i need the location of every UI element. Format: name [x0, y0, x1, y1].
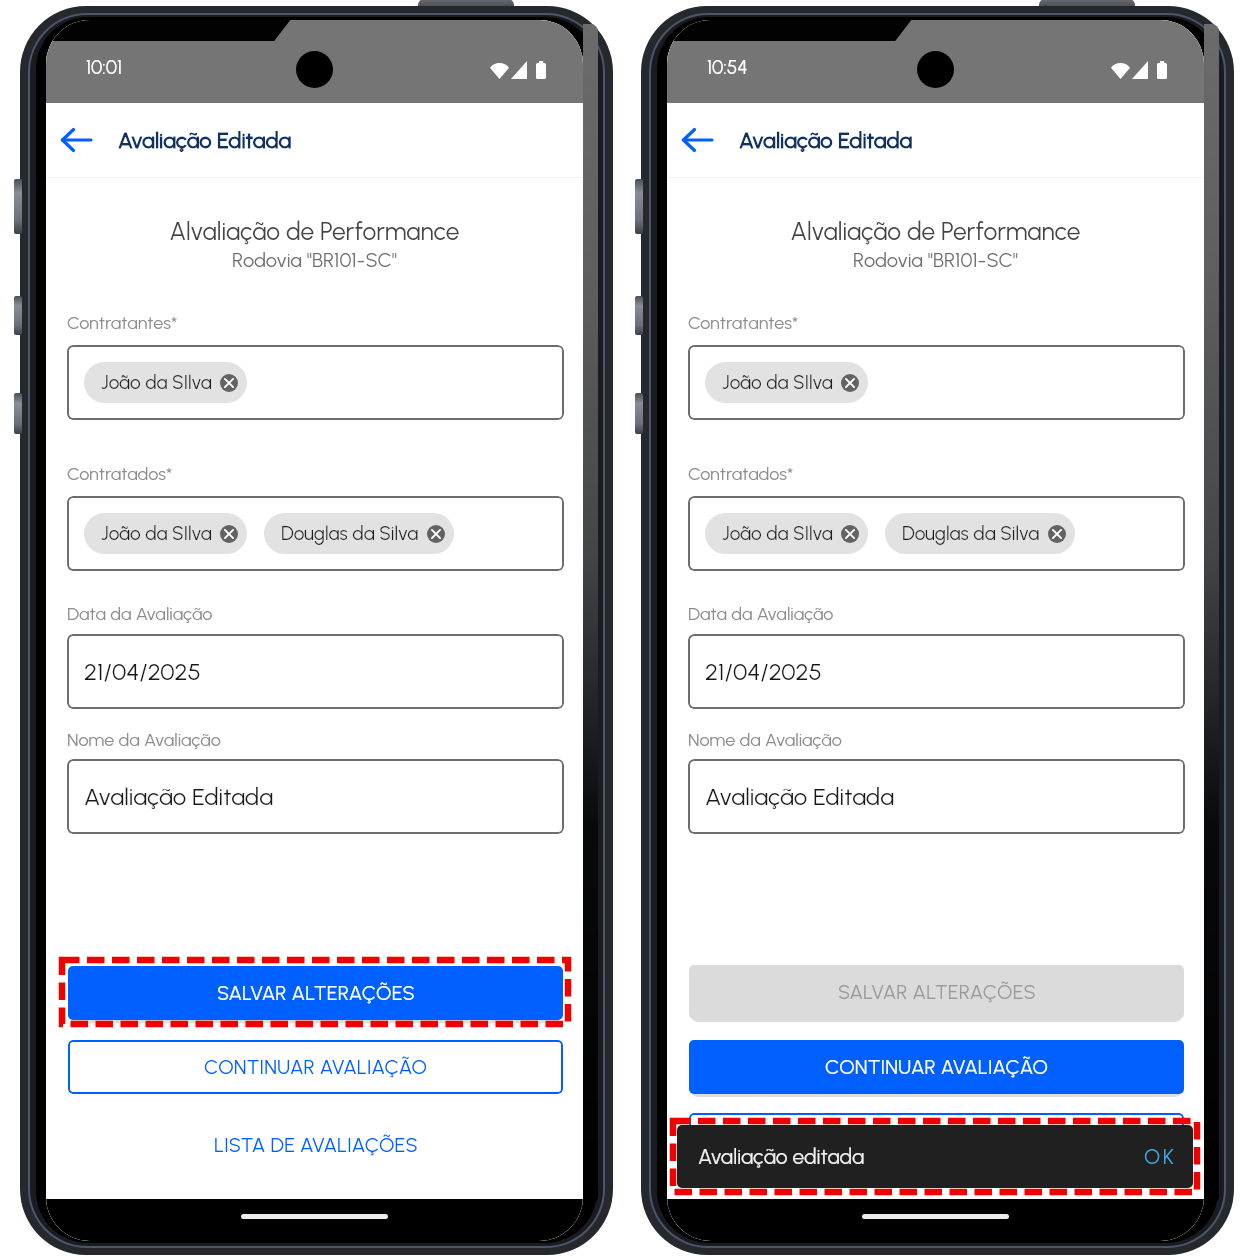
- staticText: Contratados*: [688, 463, 794, 485]
- staticText: 21/04/2025: [84, 657, 201, 686]
- staticText: Alvaliação de Performance: [46, 217, 583, 246]
- staticText: Douglas da Silva: [281, 522, 419, 545]
- button[interactable]: Douglas da Silva: [264, 513, 454, 554]
- button[interactable]: Avaliação Editada: [67, 759, 564, 834]
- button[interactable]: João da SIlva: [67, 496, 564, 571]
- button[interactable]: Avaliação editada: [677, 1125, 1193, 1188]
- staticText: CONTINUAR AVALIAÇÃO: [825, 1055, 1049, 1079]
- staticText: CONTINUAR AVALIAÇÃO: [204, 1055, 428, 1079]
- staticText: 10:54: [707, 56, 748, 79]
- button[interactable]: João da SIlva: [688, 345, 1185, 420]
- staticText: Rodovia "BR101-SC": [46, 248, 583, 272]
- button[interactable]: CONTINUAR AVALIAÇÃO: [689, 1040, 1184, 1094]
- button[interactable]: [689, 1113, 1184, 1167]
- staticText: Avaliação Editada: [739, 127, 913, 153]
- staticText: Avaliação editada: [698, 1144, 865, 1169]
- button[interactable]: João da SIlva: [84, 362, 247, 403]
- staticText: João da SIlva: [101, 522, 212, 545]
- staticText: 21/04/2025: [705, 657, 822, 686]
- button[interactable]: CONTINUAR AVALIAÇÃO: [68, 1040, 563, 1094]
- staticText: João da SIlva: [101, 371, 212, 394]
- staticText: Nome da Avaliação: [688, 729, 842, 751]
- staticText: Rodovia "BR101-SC": [667, 248, 1204, 272]
- button[interactable]: SALVAR ALTERAÇÕES: [689, 965, 1184, 1019]
- staticText: Douglas da Silva: [902, 522, 1040, 545]
- staticText: OK: [1144, 1144, 1177, 1169]
- staticText: João da SIlva: [722, 371, 833, 394]
- staticText: Alvaliação de Performance: [667, 217, 1204, 246]
- staticText: SALVAR ALTERAÇÕES: [217, 981, 415, 1005]
- staticText: Contratantes*: [67, 312, 178, 334]
- staticText: Contratados*: [67, 463, 173, 485]
- staticText: Data da Avaliação: [688, 603, 834, 625]
- staticText: João da SIlva: [722, 522, 833, 545]
- button[interactable]: 21/04/2025: [688, 634, 1185, 709]
- button[interactable]: João da SIlva: [688, 496, 1185, 571]
- staticText: Avaliação Editada: [118, 127, 292, 153]
- button[interactable]: João da SIlva: [705, 513, 868, 554]
- button[interactable]: João da SIlva: [84, 513, 247, 554]
- staticText: SALVAR ALTERAÇÕES: [838, 980, 1036, 1004]
- button[interactable]: Voltar: [50, 114, 102, 166]
- staticText: Nome da Avaliação: [67, 729, 221, 751]
- staticText: Contratantes*: [688, 312, 799, 334]
- staticText: LISTA DE AVALIAÇÕES: [214, 1133, 418, 1157]
- button[interactable]: SALVAR ALTERAÇÕES: [68, 966, 563, 1020]
- button[interactable]: João da SIlva: [705, 362, 868, 403]
- button[interactable]: OK: [1141, 1141, 1180, 1172]
- button[interactable]: Voltar: [671, 114, 723, 166]
- button[interactable]: Douglas da Silva: [885, 513, 1075, 554]
- button[interactable]: Avaliação Editada: [688, 759, 1185, 834]
- button[interactable]: 21/04/2025: [67, 634, 564, 709]
- staticText: Avaliação Editada: [705, 782, 895, 811]
- button[interactable]: João da SIlva: [67, 345, 564, 420]
- staticText: 10:01: [86, 56, 123, 79]
- staticText: Avaliação Editada: [84, 782, 274, 811]
- button[interactable]: LISTA DE AVALIAÇÕES: [68, 1120, 563, 1170]
- staticText: Data da Avaliação: [67, 603, 213, 625]
